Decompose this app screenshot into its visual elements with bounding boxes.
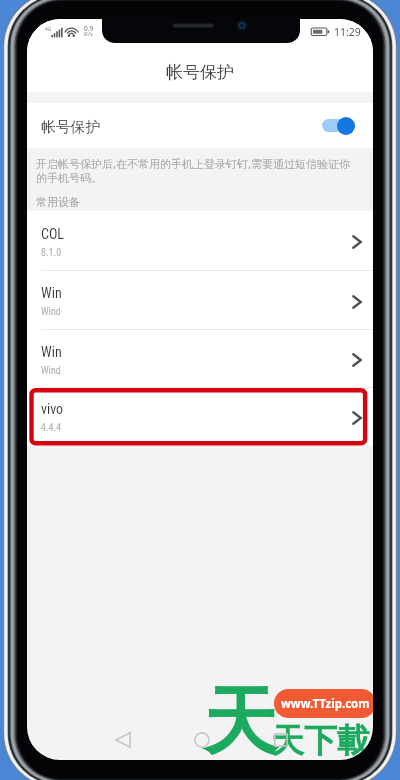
button[interactable]: COL [27,211,373,271]
button[interactable]: Account protection toggle [322,116,355,135]
staticText: Wind [41,306,61,318]
button[interactable]: Recents [259,718,303,760]
staticText: www.TTzip.com [281,696,370,712]
staticText: Wind [41,365,61,377]
staticText: 8.1.0 [41,247,62,259]
staticText: 开启帐号保护后,在不常用的手机上登录钉钉,需要通过短信验证你的手机号码。 [36,156,352,185]
staticText: Win [41,344,62,360]
staticText: vivo [41,401,64,417]
button[interactable]: 帐号保护 [27,103,373,148]
button[interactable]: Back [101,718,145,760]
staticText: 帐号保护 [41,118,101,137]
staticText: Win [41,285,62,301]
button[interactable]: Win [27,271,373,330]
button[interactable]: Win [27,330,373,388]
button[interactable]: vivo [27,388,373,445]
staticText: 0.9 [84,24,94,33]
staticText: 帐号保护 [166,62,234,83]
staticText: 11:29 [334,25,361,39]
staticText: 天下載 [271,720,370,760]
button[interactable]: Home [180,718,224,760]
staticText: COL [41,226,65,242]
staticText: K/s [84,30,93,38]
staticText: 4.4.4 [41,422,62,434]
staticText: 4G [45,26,52,33]
staticText: 常用设备 [36,195,80,209]
staticText: 天 [203,676,277,760]
